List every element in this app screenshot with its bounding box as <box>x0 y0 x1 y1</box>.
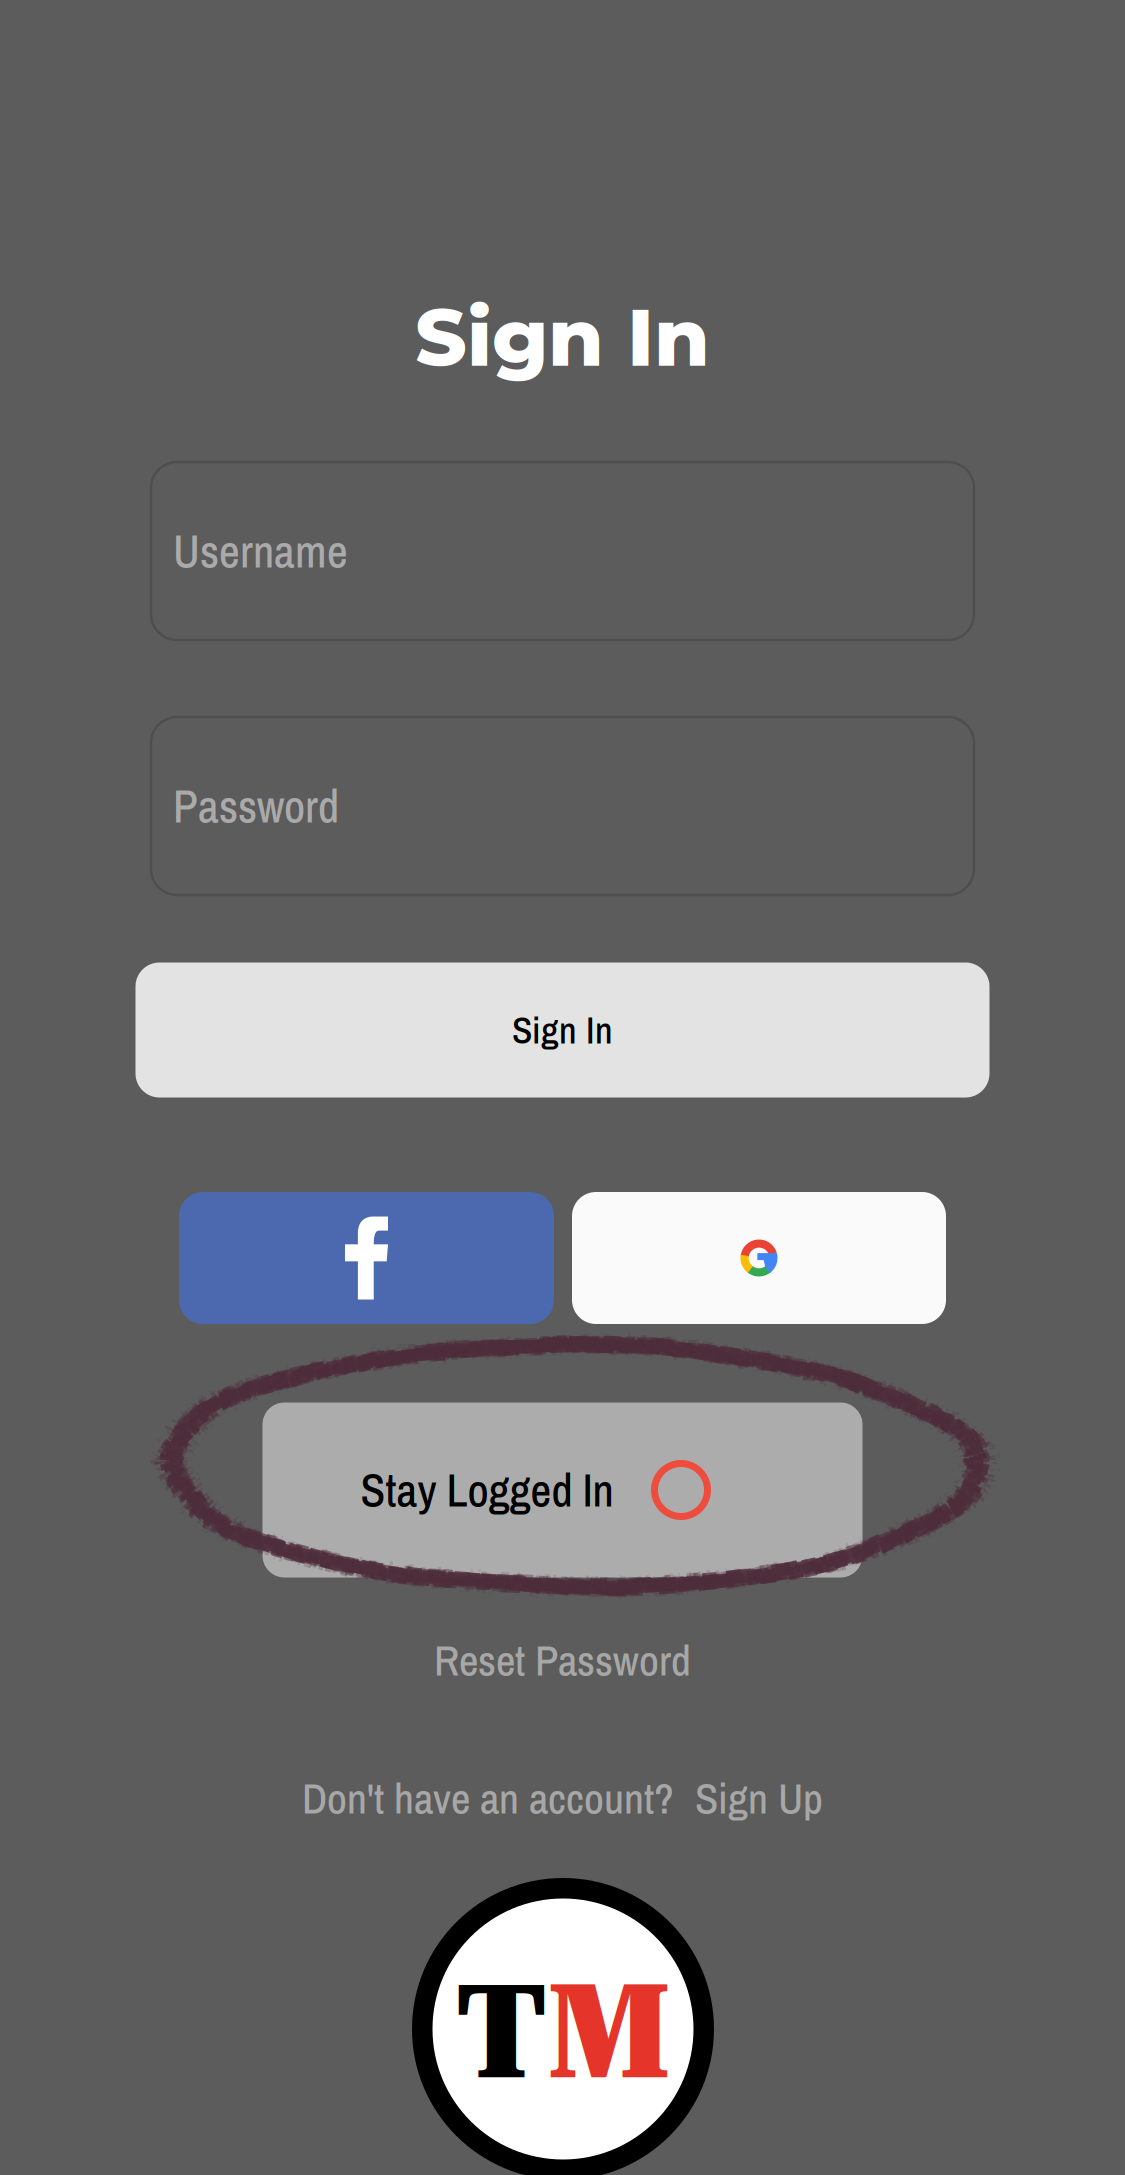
button[interactable]: Sign in with Google <box>572 1192 946 1324</box>
staticText: Reset Password <box>434 1631 691 1689</box>
staticText: Username <box>173 520 348 582</box>
staticText: Stay Logged In <box>360 1459 613 1521</box>
staticText: Sign In <box>415 288 710 386</box>
staticText: Sign In <box>512 1005 613 1055</box>
button[interactable]: Reset Password <box>434 1631 691 1689</box>
staticText: Password <box>173 775 339 837</box>
button[interactable]: Sign in with Facebook <box>179 1192 554 1324</box>
button[interactable]: Sign In <box>135 962 989 1097</box>
staticText: T <box>455 1957 547 2109</box>
button[interactable]: Sign Up <box>695 1769 823 1827</box>
button[interactable]: Stay Logged In <box>262 1402 862 1577</box>
staticText: M <box>547 1957 670 2109</box>
staticText: Sign Up <box>695 1769 823 1827</box>
staticText: Don't have an account? <box>302 1769 674 1827</box>
